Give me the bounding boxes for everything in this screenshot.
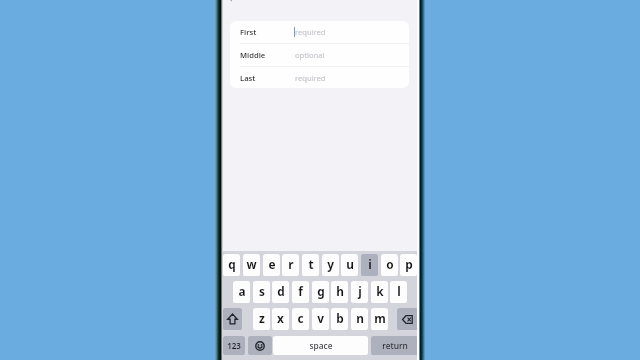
button[interactable]: Back (218, 0, 240, 7)
staticText: k (376, 283, 384, 299)
staticText: r (288, 256, 294, 272)
button[interactable]: v (312, 308, 329, 330)
staticText: 123 (227, 340, 241, 351)
button[interactable]: a (233, 281, 250, 303)
staticText: Middle (240, 50, 266, 60)
button[interactable]: k (371, 281, 388, 303)
staticText: return (382, 340, 408, 351)
button[interactable]: o (381, 254, 398, 276)
button[interactable]: t (302, 254, 319, 276)
staticText: c (297, 310, 304, 326)
staticText: s (259, 283, 265, 299)
button[interactable]: h (331, 281, 348, 303)
button[interactable]: f (292, 281, 309, 303)
staticText: p (405, 256, 413, 272)
button[interactable]: u (341, 254, 358, 276)
staticText: n (356, 310, 364, 326)
button[interactable]: n (351, 308, 368, 330)
button[interactable]: z (253, 308, 270, 330)
button[interactable]: Backspace (397, 308, 418, 330)
staticText: h (336, 283, 344, 299)
button[interactable]: Shift (223, 308, 242, 330)
staticText: e (268, 256, 276, 272)
button[interactable]: y (322, 254, 339, 276)
staticText: i (368, 256, 372, 272)
button[interactable]: l (390, 281, 407, 303)
staticText: a (238, 283, 246, 299)
staticText: space (309, 340, 333, 351)
button[interactable]: e (263, 254, 280, 276)
staticText: optional (295, 50, 325, 60)
button[interactable]: q (223, 254, 240, 276)
button[interactable]: i (361, 254, 378, 276)
button[interactable]: First (230, 21, 409, 43)
button[interactable]: Last (230, 67, 409, 88)
staticText: w (246, 256, 257, 272)
button[interactable]: 123 (223, 336, 245, 355)
button[interactable]: Emoji (248, 336, 272, 355)
button[interactable]: g (312, 281, 329, 303)
button[interactable]: space (273, 336, 368, 355)
button[interactable]: j (351, 281, 368, 303)
staticText: x (277, 310, 284, 326)
staticText: m (374, 310, 386, 326)
staticText: Last (240, 73, 256, 83)
button[interactable]: x (272, 308, 289, 330)
staticText: u (346, 256, 354, 272)
staticText: j (358, 283, 362, 299)
button[interactable]: w (243, 254, 260, 276)
staticText: f (298, 283, 303, 299)
staticText: y (327, 256, 334, 272)
button[interactable]: b (331, 308, 348, 330)
button[interactable]: s (253, 281, 270, 303)
button[interactable]: c (292, 308, 309, 330)
staticText: q (228, 256, 236, 272)
button[interactable]: p (400, 254, 417, 276)
staticText: o (386, 256, 394, 272)
staticText: required (295, 73, 326, 83)
staticText: g (317, 283, 325, 299)
button[interactable]: m (371, 308, 388, 330)
staticText: b (336, 310, 344, 326)
staticText: z (259, 310, 265, 326)
staticText: l (397, 283, 401, 299)
staticText: required (295, 27, 326, 37)
staticText: First (240, 27, 257, 37)
button[interactable]: d (272, 281, 289, 303)
button[interactable]: r (282, 254, 299, 276)
button[interactable]: return (371, 336, 418, 355)
staticText: v (317, 310, 324, 326)
button[interactable]: Middle (230, 44, 409, 66)
staticText: t (308, 256, 314, 272)
staticText: d (277, 283, 285, 299)
